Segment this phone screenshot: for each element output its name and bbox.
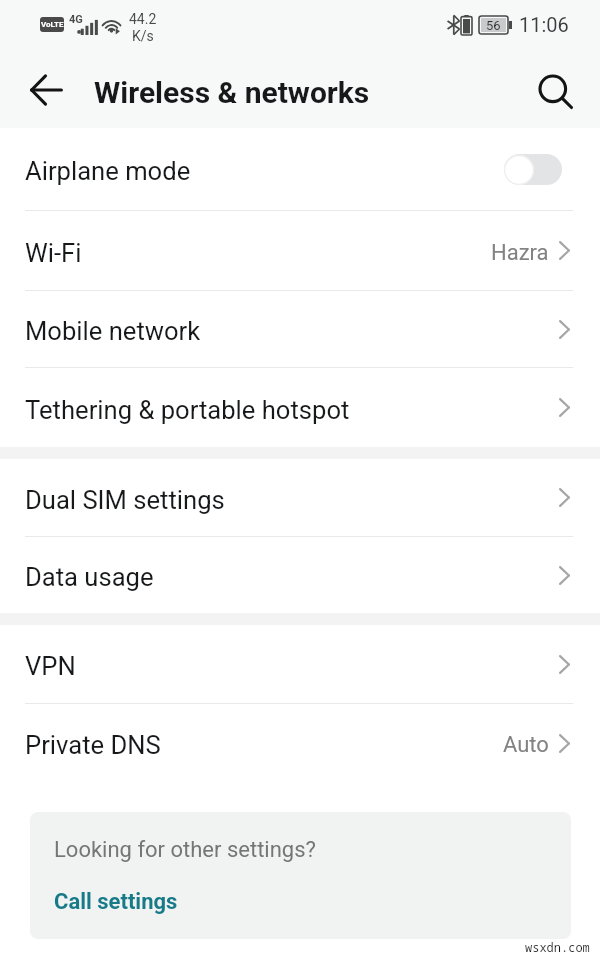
button[interactable]: Dual SIM settings xyxy=(0,459,600,536)
staticText: Tethering & portable hotspot xyxy=(25,395,350,425)
button[interactable]: Wi-Fi xyxy=(0,211,600,290)
button[interactable]: Looking for other settings? xyxy=(30,812,571,939)
staticText: Private DNS xyxy=(25,730,161,760)
staticText: wsxdn.com xyxy=(525,939,590,955)
button[interactable]: Airplane mode xyxy=(0,128,600,210)
button[interactable]: VPN xyxy=(0,625,600,703)
button[interactable]: Back xyxy=(8,62,86,118)
staticText: Auto xyxy=(503,732,549,758)
staticText: VoLTE xyxy=(41,20,64,29)
staticText: 4G xyxy=(69,13,83,26)
staticText: 44.2 xyxy=(129,11,157,27)
staticText: K/s xyxy=(132,28,154,44)
staticText: Airplane mode xyxy=(25,156,191,186)
staticText: Hazra xyxy=(491,240,549,266)
button[interactable]: Search xyxy=(519,65,591,121)
button[interactable]: Data usage xyxy=(0,537,600,613)
button[interactable]: Tethering & portable hotspot xyxy=(0,368,600,447)
staticText: Data usage xyxy=(25,562,154,592)
staticText: 11:06 xyxy=(519,13,569,36)
staticText: VPN xyxy=(25,651,76,681)
button[interactable]: Call settings xyxy=(54,889,178,915)
button[interactable]: Private DNS xyxy=(0,704,600,782)
staticText: Wireless & networks xyxy=(94,75,370,110)
staticText: Dual SIM settings xyxy=(25,485,225,515)
staticText: Wi-Fi xyxy=(25,238,82,268)
staticText: Looking for other settings? xyxy=(54,837,316,863)
button[interactable]: Airplane mode toggle xyxy=(504,154,562,185)
staticText: Call settings xyxy=(54,889,178,915)
button[interactable]: Mobile network xyxy=(0,291,600,367)
staticText: 56 xyxy=(486,18,501,33)
staticText: Mobile network xyxy=(25,316,201,346)
